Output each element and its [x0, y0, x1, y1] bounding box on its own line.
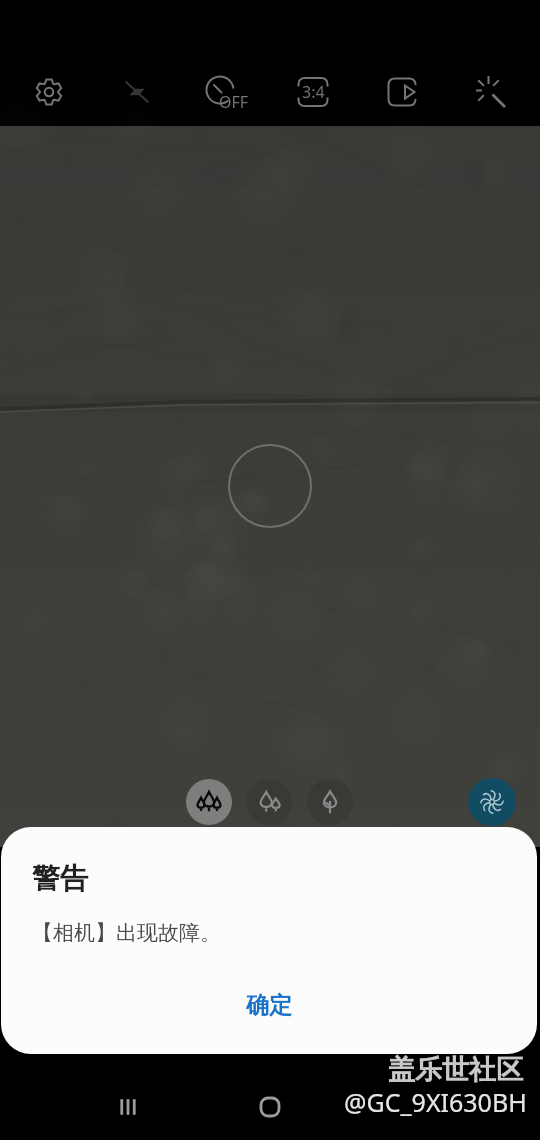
staticText: 盖乐世社区 — [388, 1053, 523, 1087]
staticText: 【相机】出现故障。 — [32, 920, 221, 946]
button[interactable]: 确定 — [1, 977, 537, 1033]
button[interactable]: Aspect ratio 3 to 4 — [289, 68, 337, 116]
staticText: 3:4 — [302, 81, 325, 103]
staticText: 确定 — [246, 991, 292, 1020]
button[interactable]: Settings — [25, 68, 73, 116]
button[interactable]: Beauty filter level 2 — [246, 779, 292, 825]
button[interactable]: Home — [246, 1083, 294, 1131]
button[interactable]: Recent apps — [104, 1083, 152, 1131]
button[interactable]: Beauty filter level 1 — [186, 779, 232, 825]
staticText: @GC_9XI630BH — [344, 1085, 527, 1119]
button[interactable]: Shutter — [468, 778, 516, 826]
staticText: 警告 — [32, 861, 88, 896]
button[interactable]: Timer off — [197, 68, 253, 116]
button[interactable]: Effects — [466, 68, 514, 116]
button[interactable]: Motion photo — [378, 68, 426, 116]
staticText: OFF — [219, 91, 249, 113]
button[interactable]: Beauty filter level 3 — [307, 779, 353, 825]
button[interactable]: Flash off — [113, 68, 161, 116]
